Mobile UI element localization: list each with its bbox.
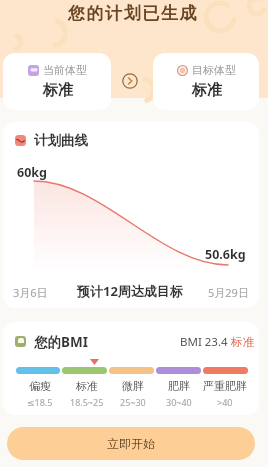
staticText: 标准 bbox=[76, 379, 98, 393]
staticText: 您的BMI bbox=[34, 333, 88, 351]
staticText: 计划曲线 bbox=[34, 132, 88, 149]
button[interactable]: 立即开始 bbox=[7, 427, 255, 460]
staticText: 50.6kg bbox=[205, 246, 246, 263]
staticText: ≤18.5 bbox=[27, 396, 53, 408]
staticText: 偏瘦 bbox=[29, 379, 51, 393]
staticText: 5月29日 bbox=[208, 285, 249, 300]
staticText: BMI 23.4 bbox=[180, 334, 231, 350]
staticText: 60kg bbox=[17, 164, 47, 181]
staticText: 严重肥胖 bbox=[203, 379, 247, 393]
staticText: 标准 bbox=[231, 335, 254, 349]
staticText: 标准 bbox=[43, 81, 73, 100]
staticText: 3月6日 bbox=[13, 285, 48, 300]
staticText: 预计12周达成目标 bbox=[77, 282, 183, 300]
staticText: 肥胖 bbox=[168, 379, 190, 393]
staticText: 目标体型 bbox=[192, 63, 236, 77]
staticText: 当前体型 bbox=[43, 63, 87, 77]
staticText: 18.5~25 bbox=[70, 396, 104, 408]
staticText: >40 bbox=[217, 396, 233, 408]
button[interactable]: 目标体型 bbox=[153, 53, 259, 110]
staticText: 25~30 bbox=[120, 396, 146, 408]
staticText: 标准 bbox=[192, 81, 222, 100]
staticText: 30~40 bbox=[166, 396, 192, 408]
staticText: 立即开始 bbox=[107, 436, 155, 451]
button[interactable]: 当前体型 bbox=[3, 53, 111, 110]
staticText: 微胖 bbox=[122, 379, 144, 393]
staticText: 您的计划已生成 bbox=[0, 3, 267, 24]
button[interactable]: Next bbox=[122, 73, 138, 89]
